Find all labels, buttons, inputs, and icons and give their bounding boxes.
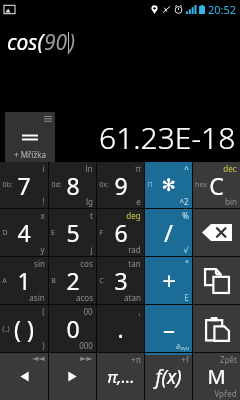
- button[interactable]: ( ): [0, 305, 48, 352]
- button[interactable]: .: [97, 305, 144, 352]
- button[interactable]: π,…: [97, 353, 144, 400]
- staticText: °: [185, 258, 189, 269]
- staticText: 9: [114, 170, 128, 201]
- staticText: lg: [86, 196, 93, 207]
- staticText: sin: [34, 258, 45, 269]
- staticText: 4: [17, 217, 31, 248]
- staticText: /: [164, 216, 173, 249]
- staticText: 61.23E-18: [99, 117, 236, 158]
- staticText: E: [51, 228, 55, 238]
- staticText: √: [183, 246, 189, 255]
- staticText: D: [2, 228, 8, 238]
- staticText: %: [182, 210, 189, 221]
- button[interactable]: f(x): [145, 353, 192, 400]
- staticText: 0d:: [51, 180, 62, 190]
- staticText: asin: [29, 292, 45, 303]
- staticText: Vpřed: [214, 388, 237, 399]
- staticText: ►►: [80, 354, 93, 363]
- staticText: ): [69, 28, 76, 57]
- button[interactable]: 3: [97, 257, 144, 304]
- staticText: !: [42, 196, 45, 207]
- staticText: deg: [126, 210, 141, 221]
- staticText: 20:52: [208, 2, 237, 17]
- button[interactable]: Move right: [49, 353, 96, 400]
- staticText: +π: [131, 354, 141, 365]
- staticText: cos: [80, 258, 93, 269]
- staticText: B: [51, 276, 56, 286]
- staticText: dec: [223, 163, 237, 174]
- staticText: A: [2, 276, 7, 286]
- button[interactable]: + Mřížka: [5, 112, 55, 162]
- staticText: 90: [44, 28, 68, 57]
- staticText: π: [135, 163, 141, 174]
- staticText: 8: [66, 170, 80, 201]
- staticText: Zpět: [220, 354, 237, 365]
- staticText: 3: [114, 265, 128, 296]
- staticText: i: [42, 163, 45, 174]
- button[interactable]: 8: [49, 162, 96, 208]
- button[interactable]: /: [145, 209, 192, 256]
- staticText: 0: [66, 313, 80, 344]
- staticText: C: [209, 170, 224, 201]
- staticText: 0b:: [2, 180, 13, 190]
- staticText: 6: [114, 217, 128, 248]
- staticText: + Mřížka: [14, 149, 46, 160]
- staticText: 2: [66, 265, 80, 296]
- button[interactable]: Move left: [0, 353, 48, 400]
- staticText: M: [207, 363, 226, 390]
- staticText: acos: [76, 292, 93, 303]
- staticText: 7: [17, 170, 31, 201]
- button[interactable]: Paste: [193, 305, 240, 352]
- staticText: –: [163, 312, 175, 345]
- staticText: .: [117, 313, 124, 344]
- staticText: tan: [128, 258, 141, 269]
- staticText: e: [136, 196, 141, 207]
- staticText: Π: [147, 180, 153, 190]
- staticText: 00: [83, 306, 93, 317]
- staticText: rad: [128, 244, 141, 255]
- button[interactable]: M: [193, 353, 240, 400]
- button[interactable]: 1: [0, 257, 48, 304]
- staticText: (: [42, 306, 45, 317]
- staticText: t: [90, 210, 93, 221]
- button[interactable]: +: [145, 257, 192, 304]
- button[interactable]: 4: [0, 209, 48, 256]
- staticText: hex: [195, 180, 207, 190]
- staticText: ∂ₓᵧᵤ: [176, 340, 189, 351]
- staticText: x: [40, 210, 45, 221]
- staticText: 0x:: [99, 180, 109, 190]
- staticText: y: [40, 244, 45, 255]
- button[interactable]: ✻: [145, 162, 192, 208]
- button[interactable]: Copy: [193, 257, 240, 304]
- staticText: C: [99, 276, 104, 286]
- button[interactable]: 6: [97, 209, 144, 256]
- button[interactable]: 5: [49, 209, 96, 256]
- staticText: ✻: [161, 175, 176, 195]
- staticText: ( ): [14, 313, 34, 344]
- button[interactable]: 2: [49, 257, 96, 304]
- staticText: E: [184, 292, 189, 303]
- button[interactable]: C: [193, 162, 240, 208]
- button[interactable]: –: [145, 305, 192, 352]
- staticText: 5: [66, 217, 80, 248]
- button[interactable]: 9: [97, 162, 144, 208]
- staticText: ,: [138, 306, 141, 317]
- button[interactable]: 7: [0, 162, 48, 208]
- staticText: ^2: [179, 196, 189, 207]
- staticText: +f: [181, 354, 189, 365]
- button[interactable]: 0: [49, 305, 96, 352]
- staticText: F: [99, 228, 103, 238]
- staticText: (_): [2, 324, 10, 334]
- staticText: j: [90, 244, 93, 255]
- staticText: ln: [85, 163, 93, 174]
- button[interactable]: Backspace: [193, 209, 240, 256]
- staticText: ): [42, 340, 45, 351]
- staticText: f(x): [155, 364, 182, 390]
- staticText: atan: [124, 292, 141, 303]
- staticText: ^: [184, 163, 189, 174]
- staticText: cos(: [7, 28, 44, 57]
- staticText: 1: [17, 265, 31, 296]
- staticText: ◄◄: [32, 354, 45, 363]
- staticText: bin: [225, 196, 237, 207]
- staticText: 000: [79, 340, 93, 351]
